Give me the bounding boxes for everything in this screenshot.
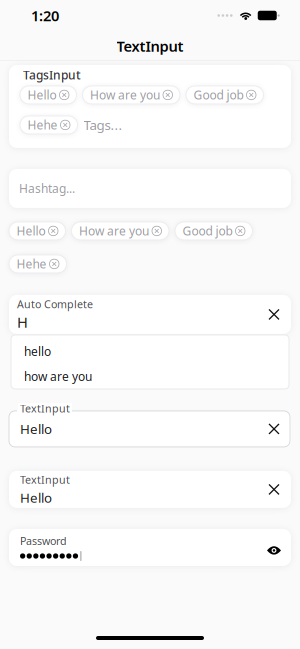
staticText: Auto Complete bbox=[17, 297, 93, 311]
button[interactable]: How are you bbox=[71, 222, 169, 240]
button[interactable]: Hello bbox=[20, 86, 76, 104]
button[interactable]: hello bbox=[11, 339, 289, 364]
staticText: Good job bbox=[182, 223, 232, 239]
button[interactable]: Hello bbox=[9, 222, 65, 240]
staticText: Hehe bbox=[27, 117, 57, 133]
staticText: Hashtag... bbox=[19, 180, 75, 196]
button[interactable]: Clear text bbox=[262, 417, 286, 441]
staticText: TextInput bbox=[20, 401, 70, 416]
staticText: TextInput bbox=[20, 472, 70, 487]
staticText: Password bbox=[20, 534, 67, 548]
staticText: H bbox=[17, 312, 28, 332]
staticText: 1:20 bbox=[31, 6, 59, 25]
staticText: Good job bbox=[193, 87, 243, 103]
staticText: hello bbox=[24, 343, 51, 359]
staticText: How are you bbox=[79, 223, 149, 239]
button[interactable]: Clear text bbox=[262, 302, 286, 326]
staticText: TextInput bbox=[116, 36, 183, 56]
button[interactable]: Good job bbox=[186, 86, 263, 104]
button[interactable]: Show password bbox=[263, 536, 285, 558]
staticText: how are you bbox=[24, 368, 92, 384]
button[interactable]: Clear text bbox=[262, 477, 286, 501]
staticText: Hello bbox=[20, 489, 52, 506]
staticText: TagsInput bbox=[23, 67, 81, 83]
staticText: Hello bbox=[27, 87, 56, 103]
staticText: Hello bbox=[20, 420, 52, 438]
button[interactable]: Hehe bbox=[20, 116, 77, 134]
staticText: Hello bbox=[16, 223, 45, 239]
staticText: Hehe bbox=[16, 256, 46, 272]
button[interactable]: How are you bbox=[82, 86, 180, 104]
button[interactable]: Good job bbox=[175, 222, 252, 240]
staticText: How are you bbox=[90, 87, 160, 103]
staticText: Tags... bbox=[83, 116, 122, 134]
button[interactable]: Hehe bbox=[9, 255, 66, 273]
button[interactable]: how are you bbox=[11, 364, 289, 389]
